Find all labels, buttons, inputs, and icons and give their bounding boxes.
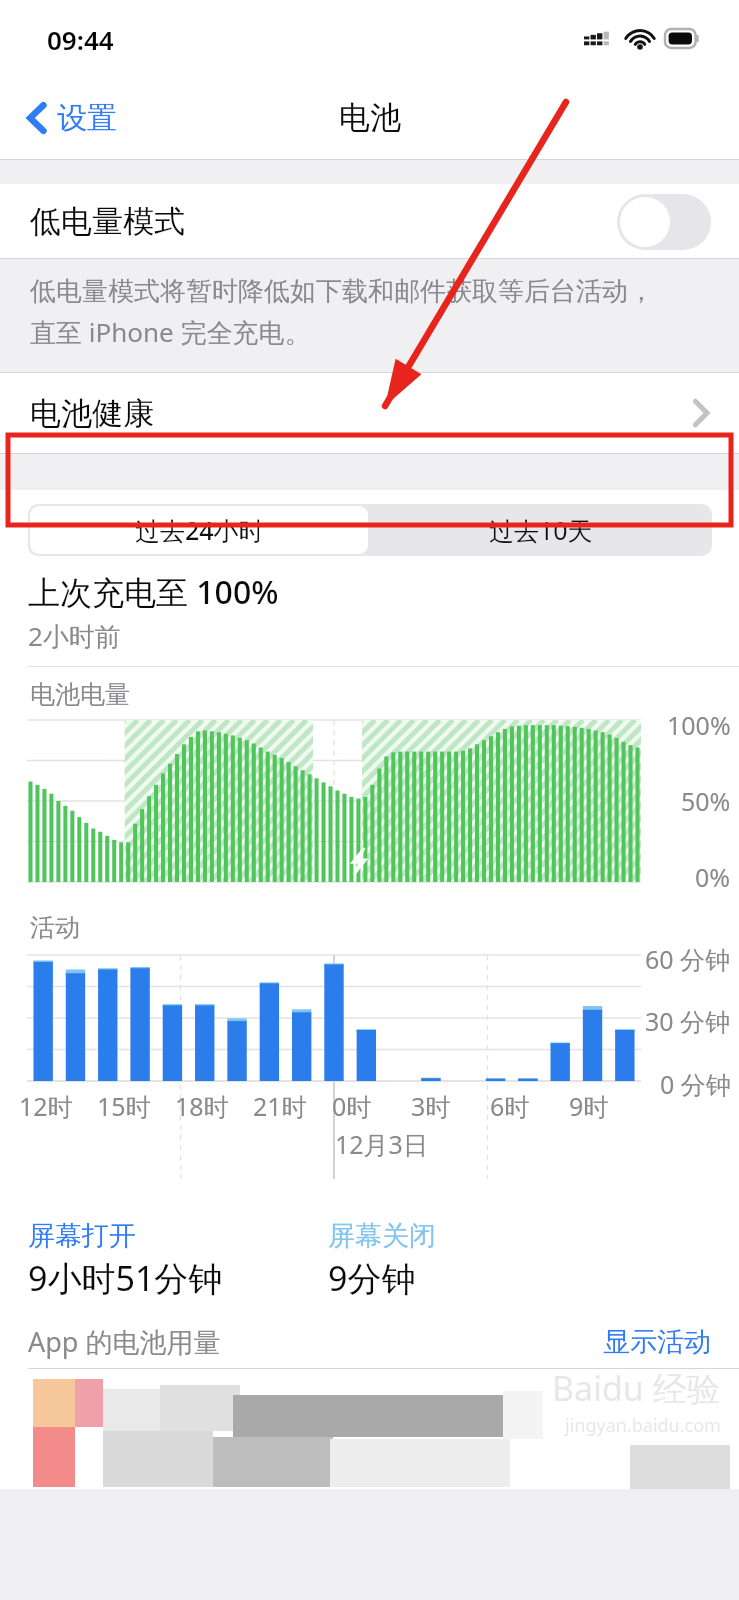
staticText: 30 分钟 [645, 1004, 731, 1038]
staticText: 电池健康 [30, 394, 154, 433]
staticText: 100% [667, 708, 731, 742]
staticText: 3时 [411, 1089, 451, 1123]
button[interactable]: Baidu 经验 [0, 1369, 739, 1489]
staticText: 低电量模式将暂时降低如下载和邮件获取等后台活动， [30, 275, 654, 308]
staticText: 9小时51分钟 [28, 1255, 223, 1301]
staticText: 18时 [175, 1089, 229, 1123]
button[interactable]: 低电量模式 [0, 184, 739, 259]
staticText: 12时 [19, 1089, 73, 1123]
staticText: 09:44 [47, 22, 114, 57]
staticText: 直至 iPhone 完全充电。 [30, 314, 311, 350]
staticText: 低电量模式 [30, 202, 185, 241]
staticText: 0% [695, 860, 731, 894]
staticText: 过去10天 [489, 513, 593, 547]
staticText: 屏幕关闭 [328, 1219, 436, 1253]
staticText: App 的电池用量 [28, 1323, 221, 1360]
staticText: 0 分钟 [660, 1067, 731, 1101]
staticText: 电池电量 [30, 679, 130, 710]
button[interactable]: 电池健康 [0, 372, 739, 454]
staticText: 15时 [97, 1089, 151, 1123]
staticText: 21时 [253, 1089, 307, 1123]
staticText: 60 分钟 [645, 942, 731, 976]
staticText: 过去24小时 [135, 513, 264, 547]
staticText: Baidu 经验 [552, 1365, 721, 1411]
staticText: 0时 [332, 1089, 372, 1123]
staticText: 9分钟 [328, 1255, 416, 1301]
staticText: 12月3日 [335, 1127, 428, 1161]
staticText: 设置 [57, 99, 117, 137]
button[interactable]: 过去10天 [370, 504, 712, 556]
staticText: 电池 [339, 98, 401, 137]
staticText: 6时 [490, 1089, 530, 1123]
button[interactable]: 设置 [22, 91, 123, 145]
staticText: 活动 [30, 912, 80, 943]
button[interactable]: 显示活动 [603, 1325, 711, 1359]
staticText: 屏幕打开 [28, 1219, 136, 1253]
staticText: 50% [681, 784, 731, 818]
button[interactable]: 过去24小时 [30, 506, 368, 554]
staticText: 2小时前 [28, 618, 121, 654]
staticText: jingyan.baidu.com [565, 1413, 721, 1438]
staticText: 9时 [569, 1089, 609, 1123]
staticText: 上次充电至 100% [28, 570, 279, 614]
button[interactable]: Low Power Mode toggle [617, 194, 711, 250]
staticText: 显示活动 [603, 1325, 711, 1359]
